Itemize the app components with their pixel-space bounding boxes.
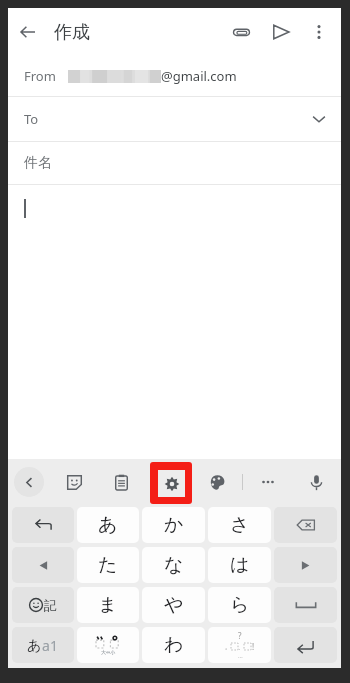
button[interactable] [274,587,337,623]
staticText: た [98,553,118,577]
button[interactable]: さ [208,507,271,543]
staticText: あ [98,513,118,537]
button[interactable]: Clipboard [104,465,138,499]
staticText: ! [252,641,255,652]
staticText: 作成 [54,21,90,44]
staticText: さ [230,513,250,537]
button[interactable] [274,547,337,583]
staticText: な [164,553,184,577]
staticText: @gmail.com [161,67,237,85]
button[interactable]: ら [208,587,271,623]
button[interactable]: 件名 [8,142,341,184]
button[interactable]: Settings [152,465,186,499]
staticText: From [24,67,56,85]
staticText: ? [238,630,242,641]
button[interactable]: は [208,547,271,583]
button[interactable] [12,547,74,583]
staticText: は [230,553,250,577]
button[interactable]: Collapse toolbar [14,467,44,497]
staticText: 1 [50,636,59,655]
button[interactable]: ? [208,627,271,663]
button[interactable]: Expand recipients [301,101,337,137]
button[interactable]: か [142,507,205,543]
staticText: … [238,652,243,660]
button[interactable]: More [251,465,285,499]
button[interactable]: Stickers [57,465,91,499]
staticText: 件名 [24,154,52,172]
button[interactable]: Send [261,12,301,52]
button[interactable] [12,507,74,543]
staticText: か [164,513,184,537]
button[interactable]: 記 [12,587,74,623]
button[interactable]: ま [77,587,139,623]
button[interactable]: From [8,56,341,96]
button[interactable]: Attach file [221,12,261,52]
button[interactable]: Themes [200,465,234,499]
button[interactable]: わ [142,627,205,663]
staticText: 記 [44,597,57,613]
staticText: わ [164,633,184,657]
button[interactable]: 大⇔小 [77,627,139,663]
button[interactable] [8,185,341,459]
staticText: ら [230,593,250,617]
button[interactable]: To [8,97,341,141]
staticText: 大⇔小 [101,649,116,655]
button[interactable]: あ [12,627,74,663]
staticText: 、 [238,643,244,651]
staticText: To [24,110,39,128]
staticText: a [42,636,50,655]
button[interactable]: More options [301,14,337,50]
button[interactable]: Voice input [299,465,333,499]
staticText: ま [98,593,118,617]
button[interactable]: た [77,547,139,583]
button[interactable]: な [142,547,205,583]
button[interactable] [274,627,337,663]
staticText: や [164,593,184,617]
button[interactable] [274,507,337,543]
button[interactable]: や [142,587,205,623]
staticText: 。 [225,643,231,651]
button[interactable]: あ [77,507,139,543]
staticText: あ [27,637,42,655]
button[interactable]: Back [8,12,48,52]
